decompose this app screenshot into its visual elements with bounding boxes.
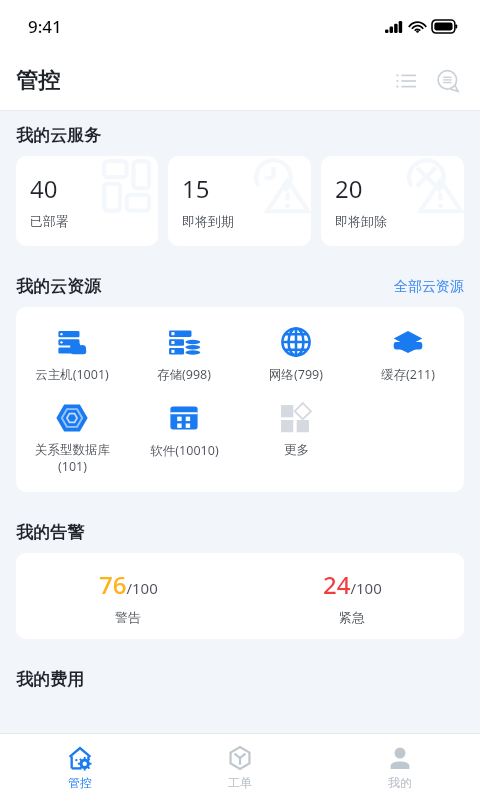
button[interactable]: 云主机(1001) xyxy=(16,323,128,385)
staticText: 我的费用 xyxy=(16,669,84,690)
button[interactable]: 15 xyxy=(168,156,311,246)
button[interactable]: 存储(998) xyxy=(128,323,240,385)
button[interactable]: 我的 xyxy=(320,734,480,800)
staticText: 我的 xyxy=(388,775,412,790)
button[interactable]: 缓存(211) xyxy=(352,323,464,385)
button[interactable]: 工单 xyxy=(160,734,320,800)
staticText: 我的告警 xyxy=(16,522,84,543)
staticText: 更多 xyxy=(284,442,309,458)
staticText: 全部云资源 xyxy=(394,278,464,296)
button[interactable]: 更多 xyxy=(240,399,352,460)
button[interactable]: 20 xyxy=(321,156,464,246)
staticText: 9:41 xyxy=(28,15,62,38)
staticText: 24/100 xyxy=(323,568,382,601)
staticText: 网络(799) xyxy=(269,366,323,383)
staticText: 即将卸除 xyxy=(335,213,387,229)
staticText: 工单 xyxy=(228,775,252,790)
button[interactable]: 全部云资源 xyxy=(394,278,464,296)
button[interactable]: 管控 xyxy=(0,734,160,800)
button[interactable]: Messages xyxy=(430,63,466,99)
staticText: 关系型数据库 (101) xyxy=(35,442,110,474)
button[interactable]: 40 xyxy=(16,156,158,246)
staticText: 云主机(1001) xyxy=(35,366,109,383)
staticText: 我的云服务 xyxy=(16,125,101,146)
button[interactable]: 网络(799) xyxy=(240,323,352,385)
staticText: 已部署 xyxy=(30,213,69,229)
button[interactable]: List xyxy=(388,63,424,99)
button[interactable]: 24/100 xyxy=(240,553,464,639)
staticText: 40 xyxy=(30,172,58,205)
staticText: 即将到期 xyxy=(182,213,234,229)
staticText: 15 xyxy=(182,172,210,205)
button[interactable]: 关系型数据库 (101) xyxy=(16,399,128,476)
staticText: 管控 xyxy=(16,67,60,95)
button[interactable]: 76/100 xyxy=(16,553,240,639)
staticText: 76/100 xyxy=(99,568,158,601)
staticText: 20 xyxy=(335,172,363,205)
staticText: 我的云资源 xyxy=(16,276,101,297)
staticText: 存储(998) xyxy=(157,366,211,383)
staticText: 管控 xyxy=(68,775,92,790)
staticText: 紧急 xyxy=(339,609,365,625)
staticText: 缓存(211) xyxy=(381,366,435,383)
button[interactable]: 软件(10010) xyxy=(128,399,240,461)
staticText: 警告 xyxy=(115,609,141,625)
staticText: 软件(10010) xyxy=(150,442,219,459)
